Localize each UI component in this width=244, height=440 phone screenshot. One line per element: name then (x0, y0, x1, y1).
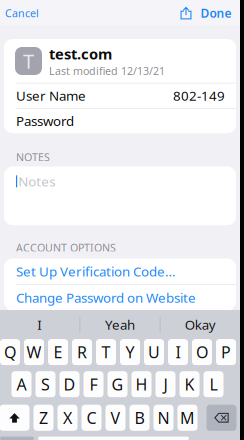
staticText: test.com (49, 44, 112, 64)
button[interactable]: E (48, 339, 68, 365)
button[interactable]: U (144, 339, 164, 365)
button[interactable]: T (4, 39, 236, 83)
button[interactable]: S (35, 371, 55, 397)
button[interactable]: D (59, 371, 79, 397)
staticText: D (63, 374, 75, 395)
staticText: Okay (185, 316, 216, 333)
staticText: C (86, 407, 96, 428)
button[interactable]: L (203, 371, 223, 397)
staticText: S (41, 374, 50, 395)
button[interactable]: F (83, 371, 103, 397)
button[interactable]: W (24, 339, 44, 365)
staticText: X (63, 407, 72, 428)
button[interactable]: I (0, 310, 80, 339)
staticText: F (89, 374, 97, 395)
button[interactable]: Change Password on Website (4, 285, 236, 310)
staticText: Set Up Verification Code… (16, 262, 176, 280)
button[interactable]: O (192, 339, 212, 365)
button[interactable]: Delete (206, 405, 236, 431)
staticText: Q (4, 341, 16, 363)
staticText: O (196, 341, 208, 363)
staticText: J (163, 374, 167, 395)
staticText: I (175, 341, 180, 363)
button[interactable]: T (96, 339, 116, 365)
button[interactable]: J (155, 371, 175, 397)
staticText: E (53, 341, 62, 363)
button[interactable]: I (168, 339, 188, 365)
button[interactable]: User Name (4, 83, 236, 108)
button[interactable]: R (72, 339, 92, 365)
staticText: T (23, 48, 34, 74)
button[interactable]: N (153, 405, 173, 431)
staticText: K (184, 374, 194, 395)
button[interactable]: Yeah (80, 310, 160, 339)
button[interactable]: G (107, 371, 127, 397)
button[interactable]: Okay (160, 310, 240, 339)
staticText: Last modified 12/13/21 (49, 64, 165, 78)
button[interactable]: Q (0, 339, 20, 365)
button[interactable]: H (131, 371, 151, 397)
button[interactable]: Password (4, 109, 236, 133)
button[interactable]: Set Up Verification Code… (4, 258, 236, 284)
staticText: Yeah (105, 316, 135, 333)
staticText: Z (39, 407, 48, 428)
button[interactable]: Cancel (0, 0, 49, 26)
button[interactable]: C (81, 405, 101, 431)
staticText: W (26, 341, 41, 363)
staticText: V (110, 407, 120, 428)
button[interactable]: X (57, 405, 77, 431)
button[interactable]: M (177, 405, 197, 431)
staticText: B (134, 407, 144, 428)
button[interactable]: Share (174, 0, 197, 26)
button[interactable]: Done (197, 0, 240, 26)
button[interactable]: V (105, 405, 125, 431)
button[interactable]: Y (120, 339, 140, 365)
staticText: L (209, 374, 217, 395)
button[interactable]: K (179, 371, 199, 397)
staticText: R (77, 341, 87, 363)
staticText: I (37, 316, 42, 333)
staticText: Notes (18, 172, 55, 190)
staticText: T (101, 341, 110, 363)
staticText: 802-149 (173, 87, 225, 104)
staticText: Done (200, 5, 231, 21)
button[interactable]: Shift (0, 405, 29, 431)
button[interactable]: Z (33, 405, 53, 431)
staticText: Change Password on Website (16, 289, 196, 306)
staticText: NOTES (16, 150, 50, 164)
button[interactable]: P (216, 339, 236, 365)
staticText: G (111, 374, 123, 395)
staticText: Y (125, 341, 134, 363)
staticText: P (221, 341, 231, 363)
button[interactable]: B (129, 405, 149, 431)
button[interactable]: A (11, 371, 31, 397)
staticText: User Name (16, 87, 86, 104)
staticText: A (16, 374, 26, 395)
staticText: ACCOUNT OPTIONS (16, 240, 116, 255)
staticText: N (157, 407, 169, 428)
staticText: U (148, 341, 160, 363)
staticText: Password (16, 112, 74, 130)
staticText: Cancel (5, 6, 39, 20)
staticText: M (180, 407, 195, 428)
staticText: H (135, 374, 147, 395)
